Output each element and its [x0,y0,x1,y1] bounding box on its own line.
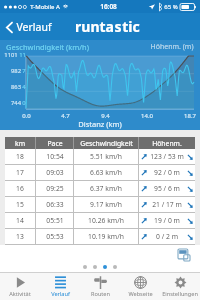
staticText: 11 [19,51,26,59]
staticText: 21 / 17 m [152,200,182,209]
staticText: 17 [16,168,24,177]
staticText: 19 / 0 m [154,216,180,225]
button[interactable]: Aktivität [0,273,40,300]
staticText: 13 [16,232,24,241]
staticText: T-Mobile A [30,3,60,11]
staticText: Geschwindigkeit [80,139,133,148]
staticText: Einstellungen [162,290,198,298]
staticText: Distanz (km) [78,119,122,129]
staticText: 123 / 53 m [150,152,184,161]
staticText: 9.17 km/h [90,200,122,209]
staticText: 16 [16,184,24,193]
staticText: 95 / 6 m [154,184,180,193]
staticText: Geschwindigkeit (km/h) [6,42,89,52]
staticText: 0.0 [22,112,31,120]
staticText: 7 [22,67,26,75]
staticText: Pace [47,139,63,148]
button[interactable]: Verlauf [3,17,54,37]
staticText: 4.7 [61,112,70,120]
staticText: Verlauf [51,290,70,298]
staticText: 05:51 [46,216,64,225]
staticText: 982 [11,67,21,75]
staticText: 14 [16,216,24,225]
staticText: 744 [11,99,21,107]
staticText: 5.51 km/h [90,152,122,161]
staticText: 9.4 [101,112,110,120]
staticText: Höhenm. (m) [150,42,194,52]
staticText: 14.0 [141,112,153,120]
staticText: 1101 [4,51,18,59]
button[interactable]: 13 [5,229,195,244]
button[interactable]: Einstellungen [160,273,200,300]
button[interactable]: 14 [5,213,195,228]
staticText: runta [75,17,114,36]
staticText: 10.19 km/h [88,232,124,241]
button[interactable]: 15 [5,197,195,212]
staticText: 863 [11,83,21,91]
staticText: Verlauf [16,20,52,34]
button[interactable]: Vollbild [176,247,192,263]
staticText: Höhenm. [152,139,182,148]
staticText: Webseite [128,290,153,298]
staticText: 0 [22,99,26,107]
staticText: 4 [22,83,26,91]
staticText: Routen [91,290,110,298]
button[interactable]: Verlauf [40,273,80,300]
staticText: s [114,17,122,36]
button[interactable]: 16 [5,181,195,196]
staticText: 6.37 km/h [90,184,122,193]
button[interactable]: Webseite [120,273,160,300]
staticText: tic [122,17,140,36]
staticText: 09:25 [46,184,64,193]
staticText: km [15,139,25,148]
button[interactable]: Routen [80,273,120,300]
staticText: 65 % [164,3,178,11]
staticText: 18.7 [184,112,196,120]
staticText: 18 [16,152,24,161]
staticText: 92 / 0 m [154,168,180,177]
staticText: 06:33 [46,200,64,209]
staticText: Aktivität [9,290,31,298]
staticText: 10:54 [46,152,64,161]
button[interactable]: 17 [5,165,195,180]
staticText: 6.63 km/h [90,168,122,177]
staticText: 10.26 km/h [88,216,124,225]
staticText: 0 / 2 m [156,232,178,241]
staticText: 09:03 [46,168,64,177]
button[interactable]: 18 [5,149,195,164]
staticText: 15 [16,200,24,209]
staticText: 16:08 [100,2,117,11]
staticText: 05:53 [46,232,64,241]
